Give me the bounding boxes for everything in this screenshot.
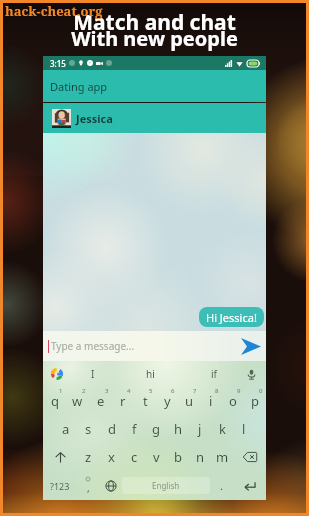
button[interactable]: w bbox=[66, 387, 89, 415]
staticText: English bbox=[152, 480, 180, 491]
staticText: l bbox=[242, 420, 246, 438]
button[interactable]: i bbox=[200, 387, 222, 415]
button[interactable]: u bbox=[178, 387, 200, 415]
staticText: e bbox=[97, 392, 105, 410]
button[interactable]: k bbox=[211, 415, 233, 443]
staticText: 1 bbox=[59, 387, 63, 395]
button[interactable]: ?123 bbox=[43, 471, 76, 500]
button[interactable]: Switch language bbox=[99, 471, 122, 500]
staticText: a bbox=[62, 420, 70, 438]
staticText: j bbox=[198, 420, 202, 438]
button[interactable]: Hi Jessica! bbox=[199, 307, 264, 327]
staticText: 7 bbox=[193, 387, 197, 395]
staticText: o bbox=[229, 392, 237, 410]
staticText: m bbox=[216, 448, 229, 466]
button[interactable]: if bbox=[200, 361, 228, 387]
staticText: I bbox=[91, 367, 95, 381]
button[interactable]: Shift bbox=[43, 443, 77, 471]
staticText: f bbox=[132, 420, 137, 438]
staticText: z bbox=[85, 448, 92, 466]
staticText: 6 bbox=[171, 387, 175, 395]
button[interactable]: Jessica bbox=[43, 103, 266, 133]
button[interactable]: d bbox=[100, 415, 123, 443]
staticText: n bbox=[196, 448, 205, 466]
staticText: hack-cheat.org bbox=[5, 2, 103, 20]
staticText: Type a message... bbox=[51, 339, 135, 353]
staticText: 4 bbox=[127, 387, 131, 395]
staticText: g bbox=[152, 420, 160, 438]
button[interactable]: hi bbox=[136, 361, 164, 387]
button[interactable]: c bbox=[123, 443, 145, 471]
staticText: ?123 bbox=[50, 480, 70, 492]
staticText: 9 bbox=[237, 387, 241, 395]
staticText: p bbox=[251, 392, 259, 410]
staticText: 8 bbox=[215, 387, 219, 395]
button[interactable]: e bbox=[89, 387, 112, 415]
button[interactable]: o bbox=[222, 387, 244, 415]
staticText: Hi Jessica! bbox=[206, 310, 257, 325]
staticText: s bbox=[85, 420, 92, 438]
staticText: Match and chat bbox=[73, 8, 236, 37]
button[interactable]: I bbox=[79, 361, 107, 387]
button[interactable]: z bbox=[77, 443, 100, 471]
staticText: With new people bbox=[71, 25, 238, 52]
button[interactable]: p bbox=[244, 387, 266, 415]
button[interactable]: Enter bbox=[233, 471, 266, 500]
staticText: if bbox=[211, 367, 218, 381]
button[interactable]: Backspace bbox=[233, 443, 266, 471]
button[interactable]: x bbox=[100, 443, 123, 471]
staticText: , bbox=[87, 481, 90, 495]
button[interactable]: , bbox=[76, 471, 99, 500]
button[interactable]: f bbox=[123, 415, 145, 443]
staticText: 5 bbox=[149, 387, 153, 395]
staticText: c bbox=[131, 448, 138, 466]
button[interactable]: h bbox=[167, 415, 189, 443]
staticText: k bbox=[219, 420, 226, 438]
staticText: w bbox=[72, 392, 83, 410]
button[interactable]: g bbox=[145, 415, 167, 443]
button[interactable]: Voice input bbox=[242, 365, 260, 383]
button[interactable]: b bbox=[167, 443, 189, 471]
button[interactable]: a bbox=[54, 415, 77, 443]
staticText: b bbox=[174, 448, 182, 466]
staticText: x bbox=[108, 448, 115, 466]
staticText: d bbox=[108, 420, 116, 438]
button[interactable]: r bbox=[112, 387, 134, 415]
button[interactable]: English bbox=[122, 477, 210, 494]
staticText: . bbox=[220, 478, 223, 493]
button[interactable]: l bbox=[233, 415, 255, 443]
staticText: u bbox=[185, 392, 194, 410]
button[interactable]: v bbox=[145, 443, 167, 471]
button[interactable]: t bbox=[134, 387, 156, 415]
staticText: v bbox=[153, 448, 160, 466]
button[interactable]: n bbox=[189, 443, 211, 471]
staticText: Jessica bbox=[76, 111, 113, 126]
button[interactable]: Dating app bbox=[43, 70, 266, 102]
staticText: 3 bbox=[105, 387, 109, 395]
button[interactable]: m bbox=[211, 443, 233, 471]
button[interactable]: y bbox=[156, 387, 178, 415]
staticText: y bbox=[164, 392, 171, 410]
staticText: 2 bbox=[82, 387, 86, 395]
button[interactable]: . bbox=[210, 471, 233, 500]
staticText: q bbox=[51, 392, 59, 410]
button[interactable]: Send bbox=[237, 332, 265, 360]
button[interactable]: q bbox=[43, 387, 66, 415]
button[interactable]: s bbox=[77, 415, 100, 443]
staticText: t bbox=[143, 392, 148, 410]
staticText: r bbox=[120, 392, 126, 410]
staticText: 3:15 bbox=[50, 58, 66, 69]
staticText: h bbox=[174, 420, 183, 438]
staticText: 0 bbox=[259, 387, 263, 395]
button[interactable]: j bbox=[189, 415, 211, 443]
staticText: hi bbox=[146, 367, 155, 381]
staticText: Dating app bbox=[50, 79, 108, 94]
staticText: i bbox=[209, 392, 213, 410]
